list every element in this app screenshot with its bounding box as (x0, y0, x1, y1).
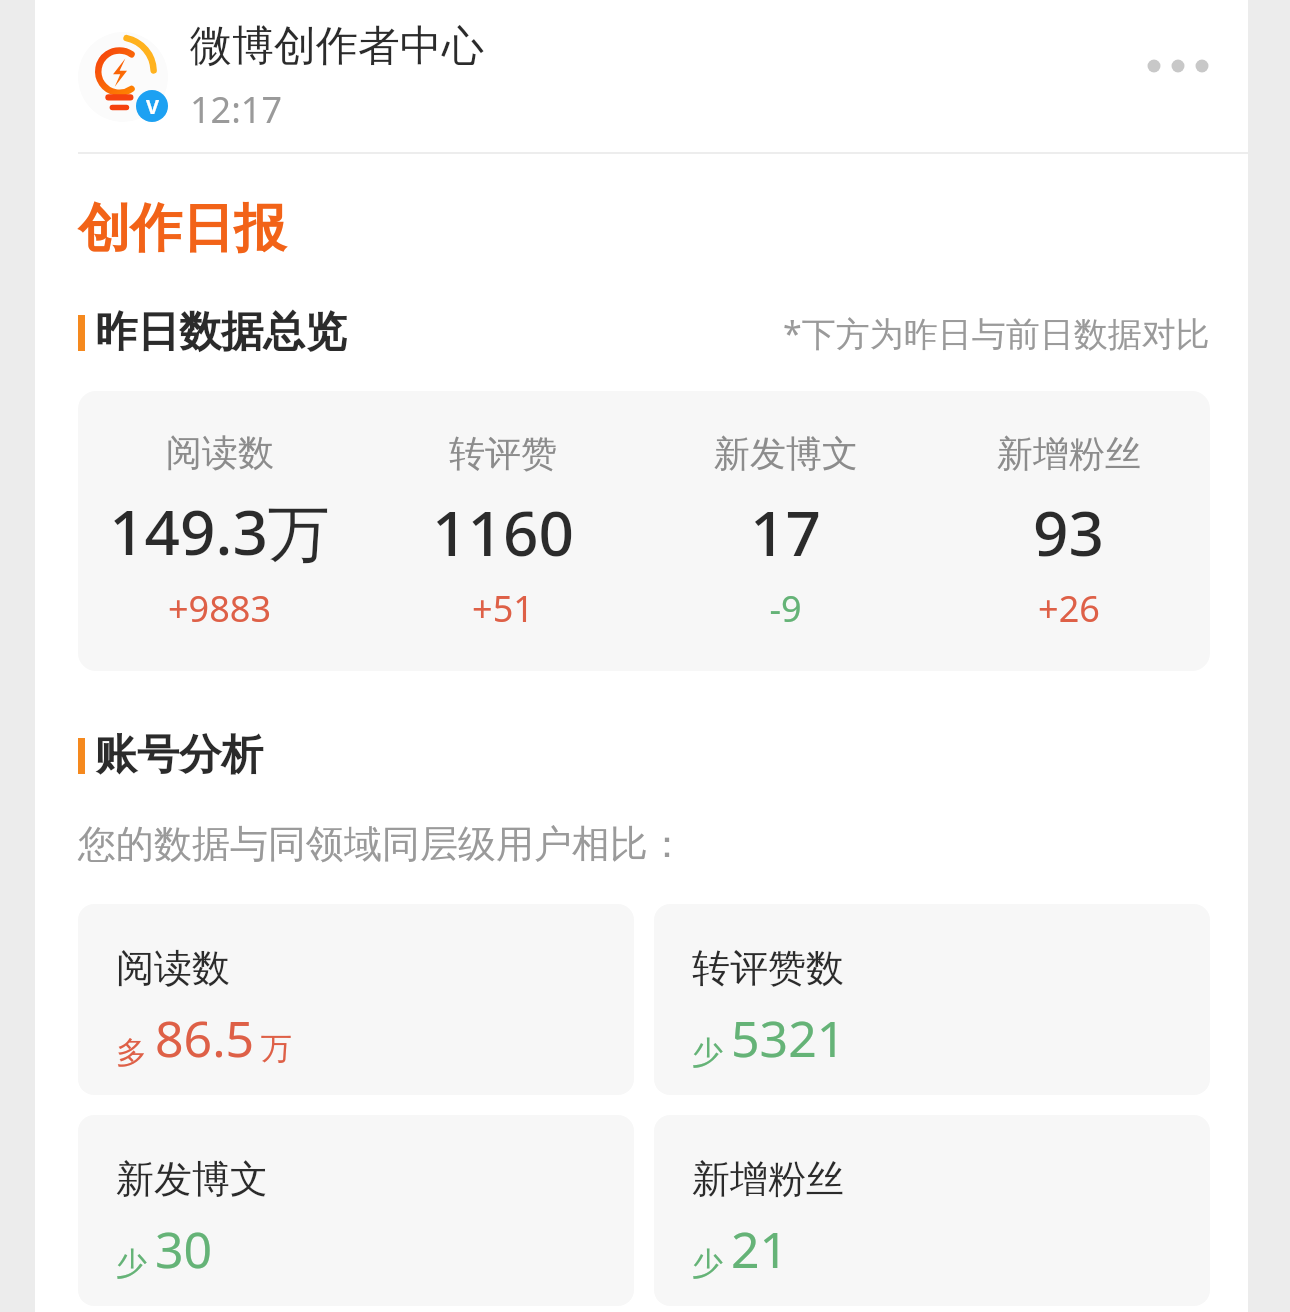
staticText: +51 (472, 584, 534, 633)
staticText: 账号分析 (95, 729, 263, 782)
staticText: 微博创作者中心 (190, 20, 484, 73)
staticText: 21 (731, 1215, 789, 1283)
button[interactable]: 新增粉丝 (654, 1115, 1210, 1306)
staticText: 93 (1033, 490, 1104, 574)
staticText: +26 (1038, 584, 1100, 633)
staticText: 30 (155, 1215, 213, 1283)
staticText: 少 (692, 1033, 723, 1072)
staticText: 新发博文 (714, 431, 858, 476)
staticText: +9883 (168, 584, 271, 633)
staticText: 创作日报 (78, 196, 286, 262)
staticText: 万 (261, 1029, 292, 1068)
staticText: 新增粉丝 (997, 431, 1141, 476)
button[interactable]: 阅读数 (78, 904, 634, 1095)
staticText: *下方为昨日与前日数据对比 (783, 310, 1210, 356)
staticText: 少 (116, 1244, 147, 1283)
staticText: V (146, 93, 159, 120)
button[interactable]: More options (1138, 46, 1218, 86)
staticText: 少 (692, 1244, 723, 1283)
staticText: 5321 (731, 1004, 846, 1072)
staticText: 转评赞数 (692, 944, 844, 992)
staticText: 86.5 (155, 1004, 255, 1072)
button[interactable]: 新发博文 (644, 431, 927, 633)
staticText: 您的数据与同领域同层级用户相比： (78, 820, 686, 868)
button[interactable]: 阅读数 (78, 430, 361, 633)
staticText: 转评赞 (449, 431, 557, 476)
staticText: 多 (116, 1033, 147, 1072)
staticText: 昨日数据总览 (95, 306, 347, 359)
staticText: 17 (750, 490, 821, 574)
staticText: 149.3万 (109, 489, 330, 574)
button[interactable]: 转评赞数 (654, 904, 1210, 1095)
button[interactable]: V (78, 20, 484, 134)
button[interactable]: 新增粉丝 (927, 431, 1210, 633)
staticText: 新增粉丝 (692, 1155, 844, 1203)
staticText: 12:17 (190, 85, 283, 134)
staticText: 新发博文 (116, 1155, 268, 1203)
staticText: 阅读数 (166, 430, 274, 475)
staticText: 1160 (432, 490, 574, 574)
staticText: 阅读数 (116, 944, 230, 992)
button[interactable]: 转评赞 (361, 431, 644, 633)
staticText: -9 (769, 584, 802, 633)
button[interactable]: 新发博文 (78, 1115, 634, 1306)
button[interactable]: 阅读数 (78, 391, 1210, 671)
